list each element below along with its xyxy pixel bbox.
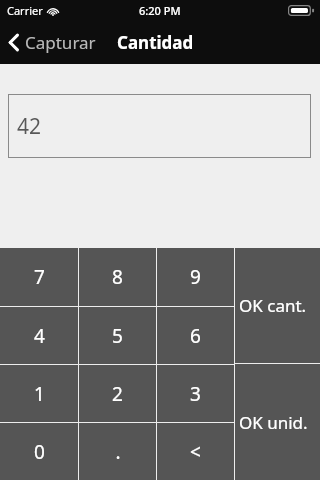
- staticText: 9: [190, 264, 201, 290]
- staticText: 7: [34, 264, 45, 290]
- staticText: Carrier: [7, 3, 43, 18]
- staticText: .: [115, 439, 121, 465]
- staticText: 6: [190, 323, 201, 349]
- button[interactable]: 42: [8, 94, 311, 158]
- staticText: OK unid.: [239, 411, 308, 434]
- staticText: 5: [112, 323, 123, 349]
- button[interactable]: 3: [157, 365, 234, 422]
- button[interactable]: 4: [0, 307, 78, 364]
- button[interactable]: 2: [79, 365, 156, 422]
- button[interactable]: 0: [0, 423, 78, 480]
- staticText: Capturar: [25, 31, 96, 54]
- button[interactable]: 9: [157, 248, 234, 306]
- staticText: 4: [34, 323, 45, 349]
- button[interactable]: 8: [79, 248, 156, 306]
- button[interactable]: OK unid.: [235, 364, 320, 480]
- button[interactable]: Capturar: [0, 20, 106, 64]
- staticText: OK cant.: [239, 294, 307, 317]
- button[interactable]: 5: [79, 307, 156, 364]
- staticText: 1: [34, 381, 45, 407]
- staticText: 2: [112, 381, 123, 407]
- staticText: <: [190, 439, 201, 465]
- button[interactable]: 1: [0, 365, 78, 422]
- staticText: 0: [34, 439, 45, 465]
- button[interactable]: 6: [157, 307, 234, 364]
- button[interactable]: 7: [0, 248, 78, 306]
- staticText: 6:20 PM: [139, 3, 181, 18]
- button[interactable]: OK cant.: [235, 248, 320, 363]
- staticText: 3: [190, 381, 201, 407]
- button[interactable]: .: [79, 423, 156, 480]
- staticText: 42: [17, 112, 42, 141]
- staticText: 8: [112, 264, 123, 290]
- staticText: Cantidad: [117, 31, 194, 54]
- button[interactable]: Backspace: [157, 423, 234, 480]
